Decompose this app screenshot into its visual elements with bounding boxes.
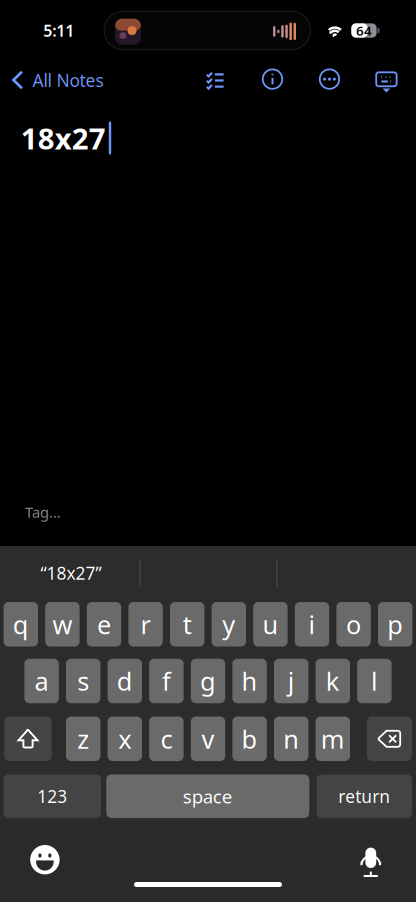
button[interactable]: More xyxy=(307,57,351,101)
staticText: All Notes xyxy=(32,69,103,92)
staticText: z xyxy=(77,722,89,756)
staticText: d xyxy=(117,664,133,698)
staticText: n xyxy=(283,722,299,756)
staticText: t xyxy=(183,607,192,641)
staticText: l xyxy=(371,664,378,698)
staticText: g xyxy=(200,664,216,698)
button[interactable]: u xyxy=(253,602,288,646)
button[interactable]: space xyxy=(106,774,309,818)
staticText: f xyxy=(162,664,171,698)
button[interactable]: x xyxy=(108,716,142,761)
button[interactable]: Hide Keyboard xyxy=(364,57,408,101)
staticText: m xyxy=(321,722,345,756)
button[interactable]: n xyxy=(274,716,308,761)
button[interactable]: Checklist xyxy=(193,57,237,101)
staticText: v xyxy=(201,722,214,756)
button[interactable]: Delete xyxy=(367,716,412,761)
staticText: Tag… xyxy=(25,502,61,522)
staticText: b xyxy=(242,722,258,756)
staticText: c xyxy=(160,722,172,756)
staticText: h xyxy=(242,664,258,698)
staticText: i xyxy=(308,607,315,641)
staticText: x xyxy=(118,722,131,756)
staticText: r xyxy=(141,607,151,641)
button[interactable]: e xyxy=(87,602,121,646)
staticText: 123 xyxy=(37,785,67,808)
button[interactable]: g xyxy=(191,659,225,703)
staticText: 5:11 xyxy=(43,20,74,41)
staticText: y xyxy=(222,607,235,641)
button[interactable]: h xyxy=(232,659,267,703)
button[interactable]: v xyxy=(191,716,225,761)
staticText: return xyxy=(338,785,390,808)
staticText: p xyxy=(387,607,403,641)
button[interactable]: o xyxy=(336,602,371,646)
button[interactable]: p xyxy=(378,602,412,646)
staticText: “18x27” xyxy=(40,561,101,584)
button[interactable]: 123 xyxy=(4,774,101,818)
button[interactable]: Shift xyxy=(4,716,52,761)
button[interactable]: Dictation xyxy=(347,834,395,882)
staticText: j xyxy=(288,664,295,698)
staticText: w xyxy=(52,607,72,641)
button[interactable]: All Notes xyxy=(2,58,111,102)
button[interactable]: b xyxy=(232,716,267,761)
button[interactable]: Emoji xyxy=(21,836,69,884)
button[interactable]: c xyxy=(149,716,184,761)
button[interactable]: r xyxy=(128,602,163,646)
button[interactable]: t xyxy=(170,602,204,646)
staticText: a xyxy=(35,664,49,698)
staticText: u xyxy=(262,607,278,641)
staticText: e xyxy=(97,607,111,641)
staticText: q xyxy=(13,607,29,641)
button[interactable]: q xyxy=(4,602,38,646)
staticText: s xyxy=(77,664,89,698)
button[interactable]: j xyxy=(274,659,308,703)
button[interactable]: Info xyxy=(250,57,294,101)
staticText: k xyxy=(326,664,340,698)
button[interactable]: f xyxy=(149,659,184,703)
button[interactable]: return xyxy=(317,774,412,818)
staticText: 18x27 xyxy=(21,118,106,157)
button[interactable]: z xyxy=(66,716,100,761)
staticText: o xyxy=(346,607,361,641)
button[interactable]: y xyxy=(212,602,246,646)
button[interactable]: d xyxy=(108,659,142,703)
button[interactable]: a xyxy=(24,659,59,703)
button[interactable]: s xyxy=(66,659,100,703)
button[interactable]: k xyxy=(316,659,350,703)
staticText: space xyxy=(183,784,233,809)
staticText: 64 xyxy=(356,22,372,39)
button[interactable]: m xyxy=(316,716,350,761)
button[interactable]: l xyxy=(357,659,392,703)
button[interactable]: i xyxy=(295,602,329,646)
button[interactable]: w xyxy=(45,602,80,646)
